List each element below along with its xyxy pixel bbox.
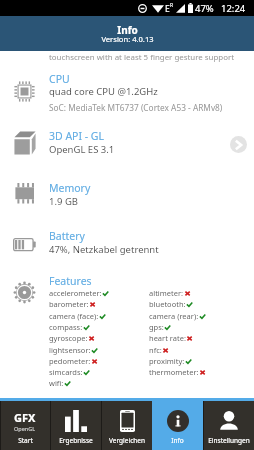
staticText: Ergebnisse (59, 436, 93, 445)
staticText: pedometer: (49, 356, 91, 366)
staticText: R (170, 2, 174, 9)
staticText: proximity: (149, 356, 185, 366)
staticText: Features (49, 274, 92, 288)
staticText: 3D API - GL (49, 129, 105, 143)
staticText: simcards: (49, 367, 83, 377)
button[interactable]: Info (152, 401, 203, 450)
staticText: OpenGL (14, 425, 36, 432)
staticText: accelerometer: (49, 288, 102, 298)
staticText: lightsensor: (49, 345, 91, 355)
staticText: SoC: MediaTek MT6737 (Cortex A53 - ARMv8… (49, 102, 223, 113)
staticText: 12:24 (221, 2, 246, 15)
staticText: camera (face): (49, 311, 99, 321)
staticText: gps: (149, 322, 164, 332)
staticText: 47% (195, 2, 214, 15)
staticText: barometer: (49, 299, 89, 309)
staticText: bluetooth: (149, 299, 186, 309)
staticText: Vergleichen (109, 436, 145, 445)
staticText: touchscreen with at least 5 finger gestu… (49, 52, 235, 63)
staticText: Info (117, 23, 138, 37)
button[interactable]: Vergleichen (101, 401, 152, 450)
button[interactable]: Ergebnisse (50, 401, 101, 450)
staticText: thermometer: (149, 367, 199, 377)
staticText: quad core CPU @1.2GHz (49, 85, 158, 98)
staticText: nfc: (149, 345, 162, 355)
staticText: CPU (49, 72, 70, 86)
staticText: OpenGL ES 3.1 (49, 143, 115, 156)
button[interactable]: Show 3D API details (230, 136, 247, 153)
staticText: Info (171, 436, 184, 445)
button[interactable]: Einstellungen (203, 401, 254, 450)
staticText: Battery (49, 229, 85, 243)
staticText: gyroscope: (49, 333, 88, 343)
staticText: 47%, Netzkabel getrennt (49, 243, 159, 256)
staticText: heart rate: (149, 333, 186, 343)
staticText: 1.9 GB (49, 195, 78, 208)
staticText: altimeter: (149, 288, 184, 298)
staticText: Start (18, 436, 33, 445)
staticText: Version: 4.0.13 (101, 34, 154, 44)
staticText: E (165, 3, 170, 15)
staticText: compass: (49, 322, 83, 332)
staticText: wifi: (49, 378, 64, 388)
staticText: Einstellungen (208, 436, 250, 445)
staticText: Memory (49, 181, 91, 195)
staticText: camera (rear): (149, 311, 199, 321)
button[interactable]: GFX (0, 401, 50, 450)
staticText: GFX (14, 410, 36, 425)
